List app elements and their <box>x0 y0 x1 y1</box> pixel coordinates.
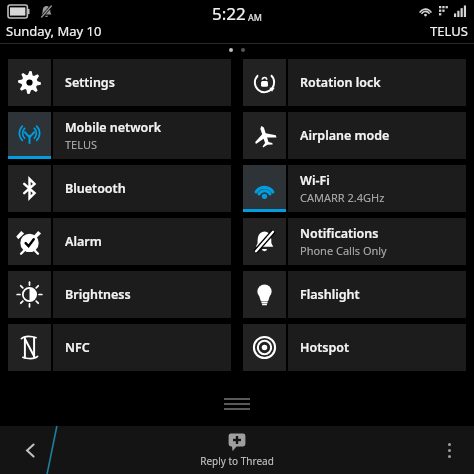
button[interactable]: Back <box>0 426 60 474</box>
staticText: Sunday, May 10 <box>6 22 102 40</box>
staticText: Brightness <box>65 286 131 303</box>
button[interactable]: Rotation lock <box>243 59 466 106</box>
staticText: Flashlight <box>300 286 360 303</box>
button[interactable]: Hotspot <box>243 324 466 371</box>
staticText: Phone Calls Only <box>300 243 387 258</box>
button[interactable]: Brightness <box>8 271 231 318</box>
staticText: Settings <box>65 74 115 91</box>
button[interactable]: Reply to Thread <box>172 426 302 474</box>
button[interactable]: NFC <box>8 324 231 371</box>
staticText: TELUS <box>430 22 468 40</box>
button[interactable]: Flashlight <box>243 271 466 318</box>
staticText: Bluetooth <box>65 180 126 197</box>
staticText: NFC <box>65 339 90 356</box>
button[interactable]: Settings <box>8 59 231 106</box>
button[interactable]: Notifications <box>243 218 466 265</box>
button[interactable]: More options <box>424 426 474 474</box>
button[interactable]: Airplane mode <box>243 112 466 159</box>
staticText: Airplane mode <box>300 127 390 144</box>
staticText: Reply to Thread <box>200 454 274 468</box>
staticText: Hotspot <box>300 339 350 356</box>
staticText: AM <box>248 11 262 23</box>
staticText: Alarm <box>65 233 102 250</box>
button[interactable]: Alarm <box>8 218 231 265</box>
staticText: Mobile network <box>65 119 162 136</box>
staticText: CAMARR 2.4GHz <box>300 190 385 205</box>
staticText: TELUS <box>65 137 97 152</box>
button[interactable]: Wi-Fi <box>243 165 466 212</box>
staticText: Wi-Fi <box>300 172 330 189</box>
button[interactable]: Mobile network <box>8 112 231 159</box>
staticText: Rotation lock <box>300 74 381 91</box>
staticText: 5:22 <box>212 2 246 25</box>
staticText: Notifications <box>300 225 379 242</box>
button[interactable]: Bluetooth <box>8 165 231 212</box>
